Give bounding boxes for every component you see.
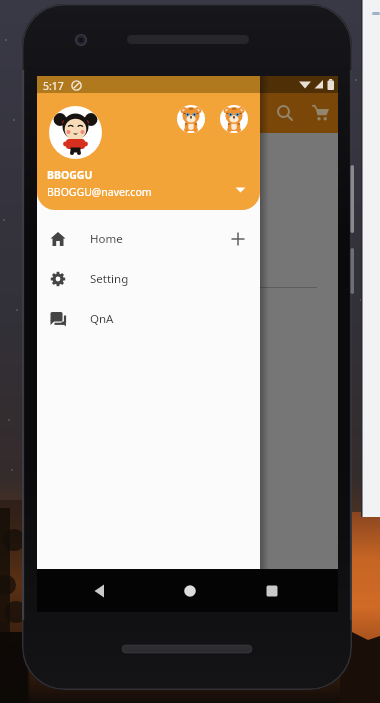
staticText: QnA — [90, 311, 114, 327]
button[interactable]: Setting — [37, 259, 260, 299]
staticText: BBOGGU@naver.com — [47, 185, 152, 199]
button[interactable] — [267, 95, 303, 131]
button[interactable] — [177, 105, 205, 133]
staticText: Home — [90, 231, 123, 247]
button[interactable] — [220, 105, 248, 133]
staticText: Setting — [90, 271, 129, 287]
staticText: BBOGGU — [47, 168, 93, 182]
button[interactable] — [223, 224, 253, 254]
button[interactable] — [303, 95, 339, 131]
button[interactable]: QnA — [37, 299, 260, 339]
button[interactable]: Home — [37, 219, 260, 259]
button[interactable] — [49, 106, 102, 159]
button[interactable] — [256, 575, 288, 607]
button[interactable] — [174, 575, 206, 607]
button[interactable] — [229, 180, 251, 200]
staticText: 5:17 — [43, 79, 64, 93]
button[interactable] — [84, 575, 116, 607]
